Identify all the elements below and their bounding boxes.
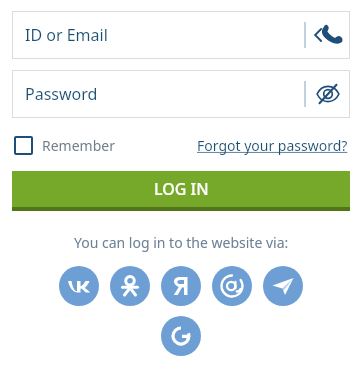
staticText: Forgot your password? [197, 136, 348, 155]
staticText: Remember [42, 136, 115, 155]
button[interactable]: Show password [306, 70, 350, 118]
button[interactable]: Password [12, 70, 350, 118]
button[interactable]: VKontakte [59, 266, 99, 306]
button[interactable]: Mail.ru [212, 266, 252, 306]
button[interactable]: Select country code [306, 11, 350, 59]
button[interactable]: Odnoklassniki [110, 266, 150, 306]
staticText: Password [25, 83, 98, 105]
button[interactable]: Forgot your password? [197, 136, 348, 155]
staticText: LOG IN [154, 178, 209, 200]
button[interactable]: Google [161, 316, 201, 356]
button[interactable]: Telegram [263, 266, 303, 306]
button[interactable]: Remember [14, 136, 121, 155]
button[interactable]: ID or Email [12, 11, 350, 59]
staticText: ID or Email [25, 24, 108, 46]
staticText: You can log in to the website via: [74, 233, 289, 252]
button[interactable]: Yandex [161, 266, 201, 306]
button[interactable]: LOG IN [12, 171, 350, 211]
